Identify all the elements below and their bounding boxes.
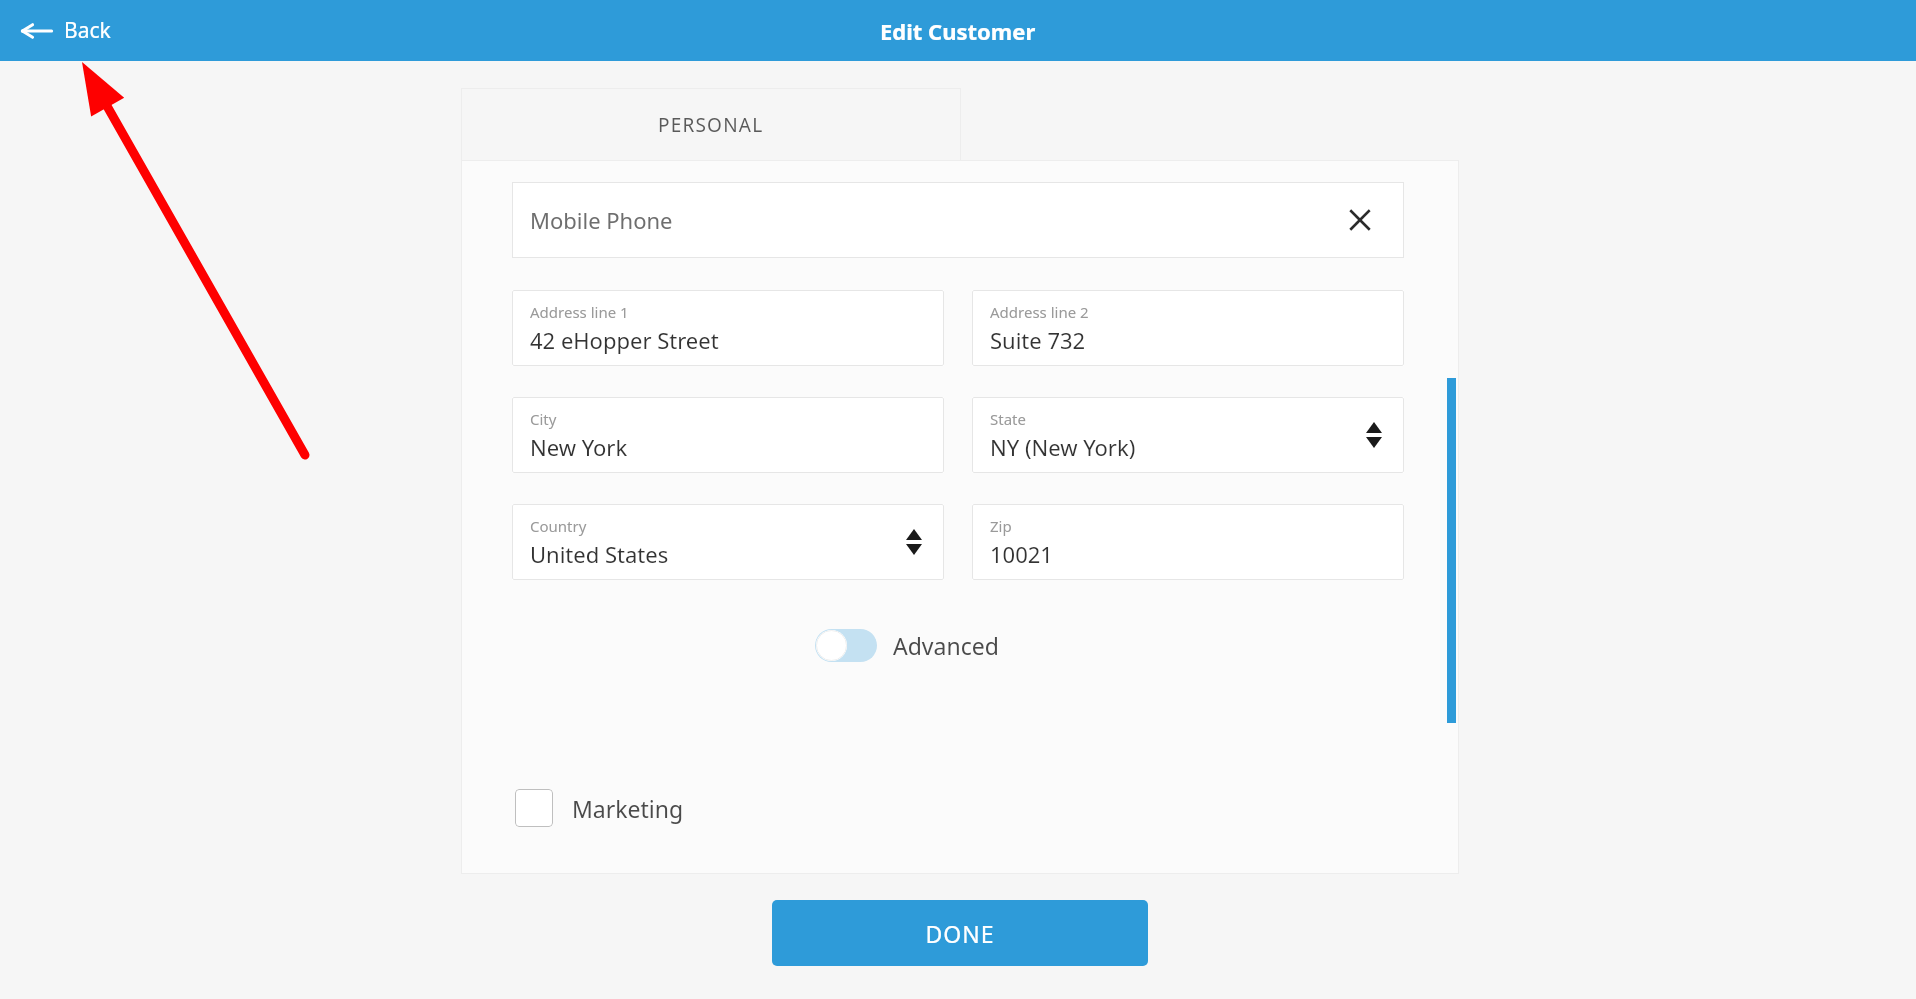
staticText: 42 eHopper Street: [530, 325, 719, 355]
staticText: City: [530, 409, 557, 429]
button[interactable]: State: [972, 397, 1404, 473]
staticText: Advanced: [893, 630, 999, 661]
staticText: State: [990, 409, 1026, 429]
staticText: United States: [530, 539, 669, 569]
button[interactable]: Clear: [1338, 198, 1382, 242]
button[interactable]: Address line 1: [512, 290, 944, 366]
button[interactable]: Marketing: [511, 785, 688, 831]
staticText: Zip: [990, 516, 1012, 536]
staticText: Country: [530, 516, 587, 536]
button[interactable]: Back: [14, 12, 117, 49]
staticText: NY (New York): [990, 432, 1136, 462]
staticText: Address line 2: [990, 302, 1089, 322]
staticText: Address line 1: [530, 302, 629, 322]
staticText: Mobile Phone: [530, 205, 673, 235]
button[interactable]: DONE: [772, 900, 1148, 966]
button[interactable]: Mobile Phone: [512, 182, 1404, 258]
staticText: 10021: [990, 539, 1053, 569]
button[interactable]: City: [512, 397, 944, 473]
staticText: DONE: [925, 918, 995, 949]
staticText: New York: [530, 432, 628, 462]
staticText: Marketing: [572, 793, 684, 824]
button[interactable]: Advanced: [811, 625, 1003, 666]
button[interactable]: Country: [512, 504, 944, 580]
button[interactable]: Address line 2: [972, 290, 1404, 366]
staticText: Suite 732: [990, 325, 1086, 355]
button[interactable]: Zip: [972, 504, 1404, 580]
button[interactable]: PERSONAL: [461, 88, 961, 161]
staticText: PERSONAL: [658, 112, 764, 138]
staticText: Edit Customer: [880, 16, 1036, 46]
staticText: Back: [64, 16, 111, 45]
